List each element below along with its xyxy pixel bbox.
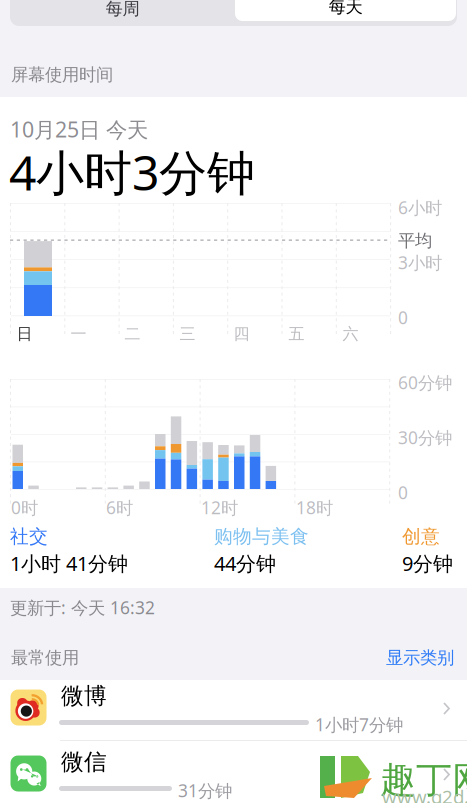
staticText: 四	[233, 324, 249, 344]
staticText: 31分钟	[178, 779, 232, 802]
staticText: 微博	[61, 682, 107, 710]
staticText: 六	[342, 324, 358, 344]
staticText: 五	[288, 324, 304, 344]
staticText: 日	[16, 324, 32, 344]
staticText: 一	[70, 324, 86, 344]
staticText: 每周	[105, 0, 139, 19]
staticText: 18时	[296, 496, 333, 519]
staticText: 每天	[328, 0, 362, 17]
staticText: 微信	[61, 748, 107, 776]
staticText: 9分钟	[402, 550, 453, 577]
staticText: 社交	[10, 525, 48, 548]
staticText: 6时	[106, 496, 133, 519]
staticText: 平均	[398, 230, 432, 251]
staticText: 显示类别	[386, 647, 454, 668]
staticText: 3小时	[398, 251, 442, 274]
staticText: 三	[179, 324, 195, 344]
staticText: 0时	[11, 496, 38, 519]
button[interactable]: 每周	[0, 0, 223, 26]
staticText: 4小时3分钟	[9, 140, 255, 204]
staticText: 屏幕使用时间	[11, 64, 113, 85]
staticText: 1小时 41分钟	[10, 550, 128, 577]
staticText: 1小时7分钟	[315, 713, 403, 736]
button[interactable]: 微信	[0, 0, 467, 55]
staticText: 创意	[402, 525, 440, 548]
staticText: 更新于: 今天 16:32	[10, 596, 155, 619]
staticText: 最常使用	[11, 647, 79, 668]
staticText: 二	[124, 324, 140, 344]
staticText: 60分钟	[398, 371, 452, 394]
staticText: 购物与美食	[214, 525, 309, 548]
staticText: 30分钟	[398, 426, 452, 449]
staticText: 12时	[201, 496, 238, 519]
staticText: 0	[398, 306, 408, 329]
staticText: 0	[398, 481, 408, 504]
staticText: 6小时	[398, 196, 442, 219]
button[interactable]: 显示类别	[0, 0, 84, 26]
button[interactable]: 微博	[0, 0, 467, 55]
staticText: 10月25日 今天	[10, 115, 148, 143]
staticText: 44分钟	[214, 550, 276, 577]
staticText: 趣丁网	[380, 758, 467, 802]
staticText: www.q2d.com	[382, 784, 467, 803]
button[interactable]: 每天	[0, 0, 221, 26]
